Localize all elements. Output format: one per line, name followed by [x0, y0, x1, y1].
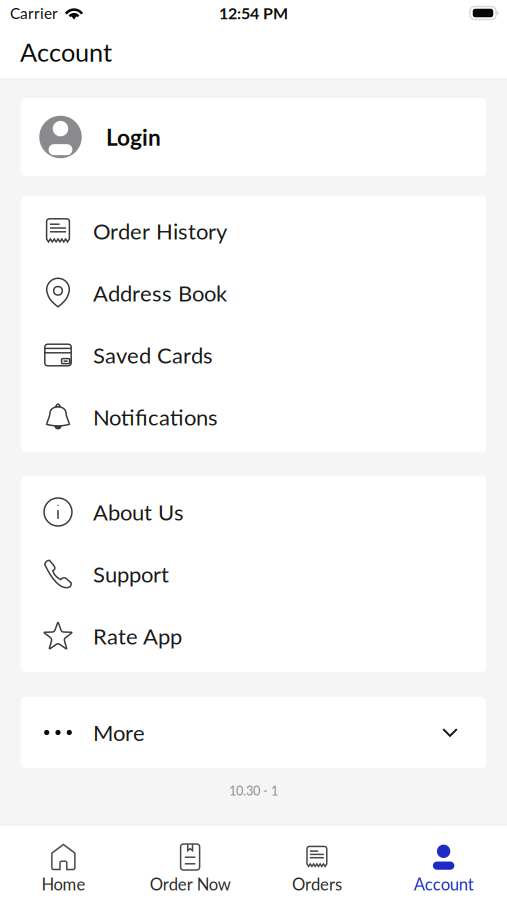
- staticText: Home: [41, 874, 85, 894]
- staticText: Rate App: [93, 623, 182, 649]
- button[interactable]: More: [21, 697, 486, 768]
- staticText: Address Book: [93, 280, 227, 306]
- staticText: Support: [93, 561, 169, 587]
- staticText: 12:54 PM: [219, 3, 288, 23]
- button[interactable]: Account: [380, 844, 507, 894]
- staticText: 10.30 - 1: [229, 783, 278, 798]
- button[interactable]: Notifications: [21, 386, 486, 448]
- staticText: Notifications: [93, 404, 218, 430]
- button[interactable]: About Us: [21, 481, 486, 543]
- button[interactable]: Login: [21, 98, 486, 176]
- staticText: Order Now: [150, 874, 231, 894]
- staticText: Carrier: [10, 4, 58, 22]
- button[interactable]: Support: [21, 543, 486, 605]
- button[interactable]: Order Now: [127, 844, 254, 894]
- staticText: Saved Cards: [93, 342, 213, 368]
- staticText: About Us: [93, 499, 184, 525]
- staticText: Orders: [292, 874, 342, 894]
- staticText: Account: [20, 37, 112, 67]
- button[interactable]: Rate App: [21, 605, 486, 667]
- button[interactable]: Order History: [21, 200, 486, 262]
- button[interactable]: Home: [0, 844, 127, 894]
- button[interactable]: Orders: [253, 844, 380, 894]
- staticText: Account: [414, 874, 474, 894]
- button[interactable]: Address Book: [21, 262, 486, 324]
- staticText: Order History: [93, 218, 227, 244]
- staticText: More: [93, 719, 145, 746]
- staticText: Login: [106, 123, 161, 151]
- button[interactable]: Saved Cards: [21, 324, 486, 386]
